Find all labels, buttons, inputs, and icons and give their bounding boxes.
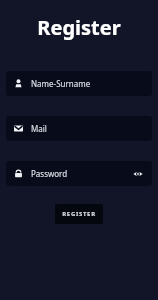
button[interactable]: Lock — [6, 161, 152, 186]
staticText: REGISTER — [62, 210, 96, 218]
staticText: Name-Surname — [31, 78, 91, 89]
staticText: Mail — [31, 123, 47, 134]
staticText: Password — [31, 168, 68, 179]
other: Person — [14, 79, 23, 88]
button[interactable]: REGISTER — [55, 204, 103, 224]
other: Lock — [14, 169, 23, 178]
staticText: Register — [37, 14, 121, 41]
other: Mail — [14, 124, 23, 133]
button[interactable]: Show password — [132, 168, 144, 180]
button[interactable]: Person — [6, 71, 152, 96]
button[interactable]: Mail — [6, 116, 152, 141]
